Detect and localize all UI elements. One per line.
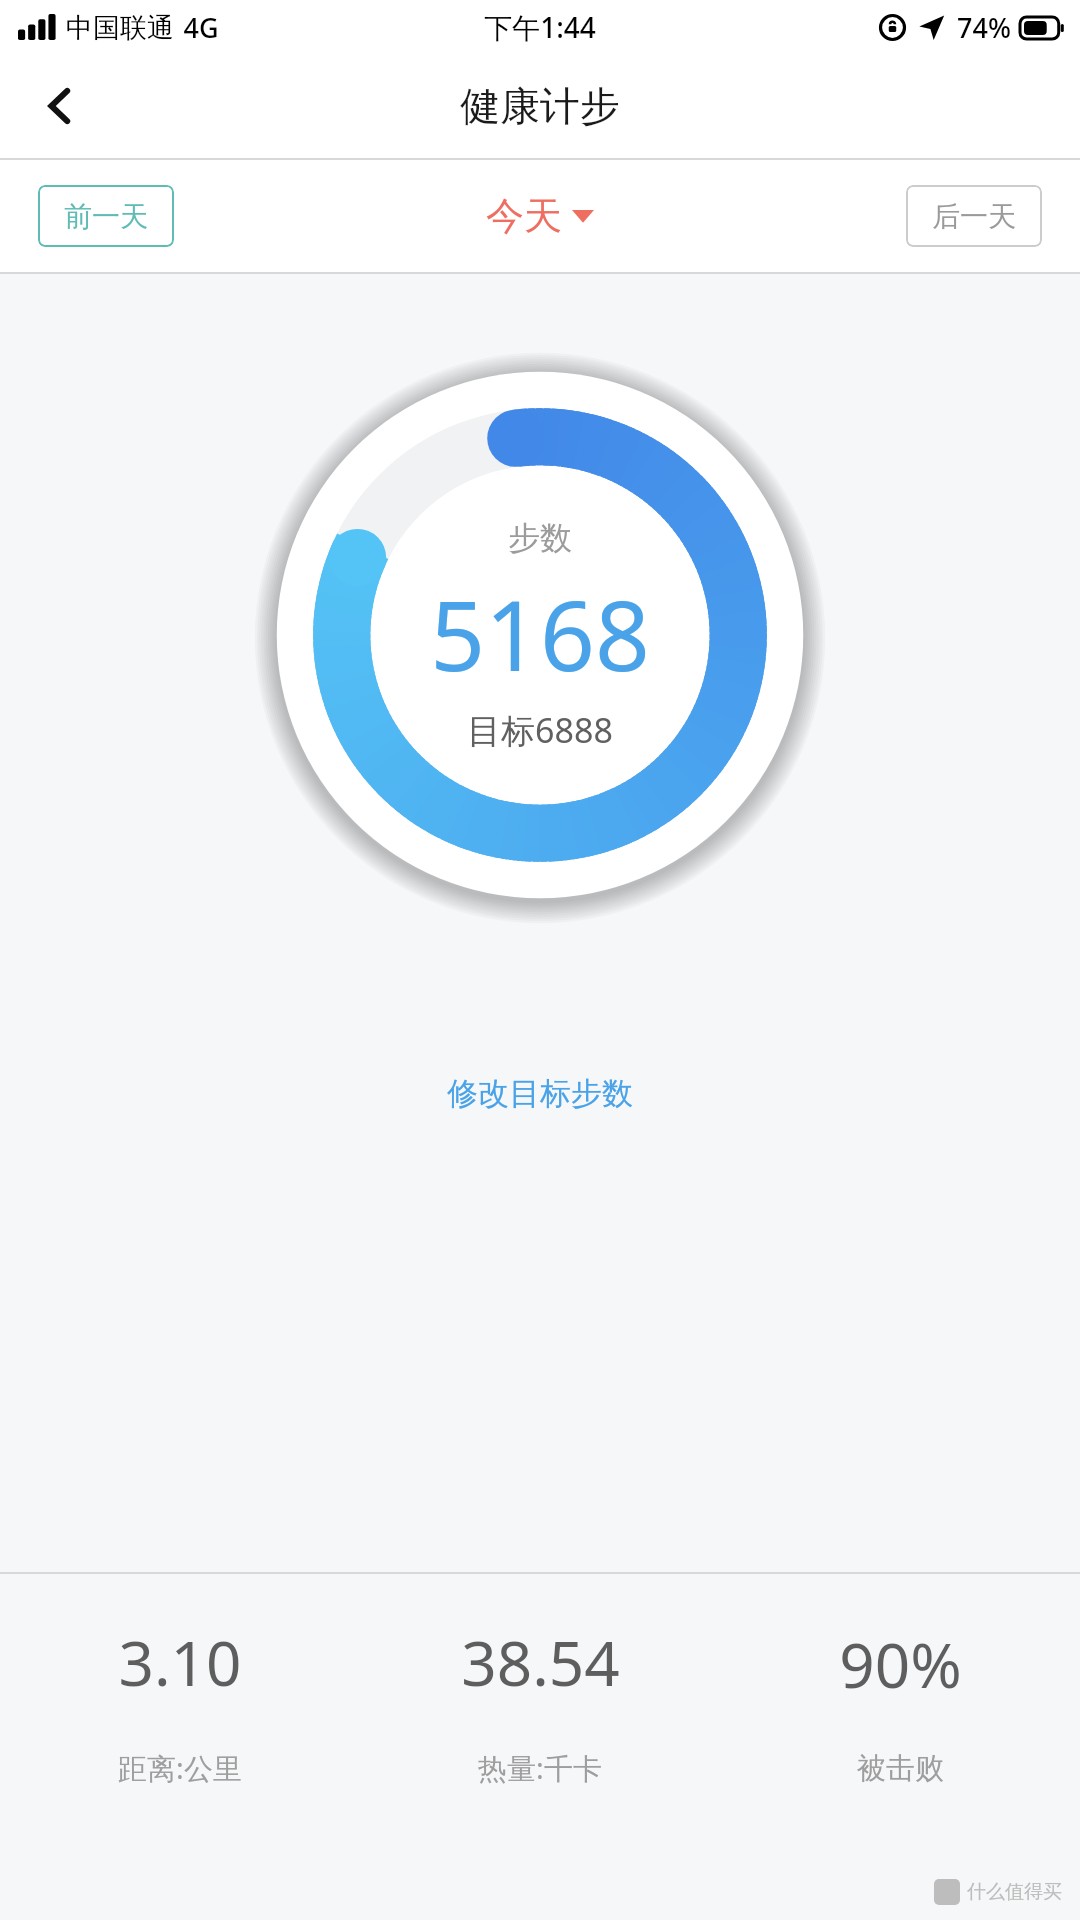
staticText: 后一天 (932, 199, 1016, 234)
button[interactable]: 修改目标步数 (423, 1064, 657, 1123)
button[interactable]: Back (22, 68, 98, 144)
staticText: 被击败 (857, 1750, 944, 1787)
staticText: 热量:千卡 (478, 1748, 602, 1788)
button[interactable]: 后一天 (906, 185, 1042, 247)
staticText: 中国联通 (66, 11, 174, 45)
staticText: 下午1:44 (484, 8, 596, 46)
staticText: 74% (957, 9, 1011, 46)
button[interactable]: 90% (720, 1610, 1080, 1799)
button[interactable]: 38.54 (360, 1608, 720, 1800)
staticText: 修改目标步数 (447, 1074, 633, 1113)
staticText: 前一天 (64, 199, 148, 234)
staticText: 4G (183, 9, 219, 46)
staticText: 3.10 (118, 1620, 242, 1704)
staticText: 5168 (430, 568, 650, 699)
staticText: 距离:公里 (118, 1748, 242, 1788)
staticText: 健康计步 (460, 81, 620, 131)
staticText: 什么值得买 (967, 1880, 1062, 1904)
button[interactable]: 前一天 (38, 185, 174, 247)
staticText: 目标6888 (467, 707, 613, 753)
staticText: 90% (839, 1622, 962, 1706)
button[interactable]: 今天 (466, 184, 614, 248)
staticText: 38.54 (461, 1620, 620, 1704)
button[interactable]: 3.10 (0, 1608, 360, 1800)
staticText: 步数 (508, 518, 572, 558)
staticText: 今天 (486, 192, 562, 240)
